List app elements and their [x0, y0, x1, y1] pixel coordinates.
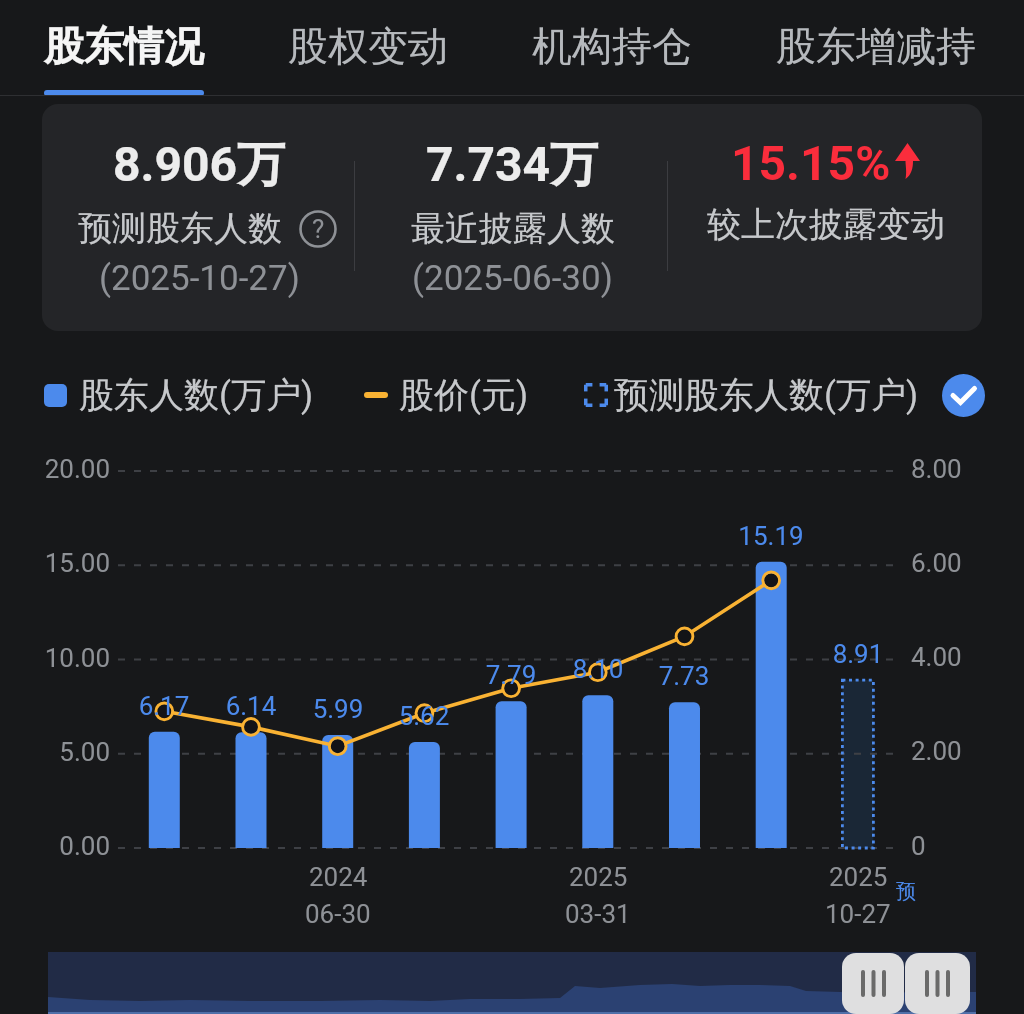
staticText: 6.14	[191, 691, 311, 721]
staticText: (2025-06-30)	[412, 258, 613, 299]
button[interactable]: 预测股东人数(万户)	[584, 373, 919, 417]
staticText: 8.91	[798, 639, 918, 669]
staticText: 机构持仓	[532, 21, 692, 71]
button[interactable]: 股权变动	[288, 0, 448, 96]
staticText: 6.17	[104, 691, 224, 721]
staticText: 0.00	[10, 831, 110, 861]
button[interactable]	[48, 952, 976, 1014]
staticText: ?	[312, 214, 325, 244]
staticText: 8.10	[538, 654, 658, 684]
button[interactable]: 已选中	[942, 374, 985, 417]
staticText: 8.00	[911, 454, 962, 484]
staticText: 股东情况	[44, 21, 204, 71]
button[interactable]: 股价(元)	[364, 373, 529, 417]
button[interactable]: 说明	[299, 210, 337, 248]
staticText: 股东人数(万户)	[79, 373, 314, 417]
staticText: 5.99	[278, 694, 398, 724]
staticText: 4.00	[911, 642, 962, 672]
staticText: 2.00	[911, 736, 962, 766]
staticText: 15.15%	[731, 135, 891, 191]
staticText: 预	[896, 879, 916, 904]
staticText: 7.73	[624, 661, 744, 691]
staticText: 股价(元)	[399, 373, 529, 417]
staticText: 预测股东人数	[78, 207, 282, 250]
staticText: 20.00	[10, 454, 110, 484]
staticText: (2025-10-27)	[99, 258, 300, 299]
staticText: 8.906万	[113, 135, 286, 195]
staticText: 03-31	[565, 899, 631, 929]
button[interactable]: 股东情况	[44, 0, 204, 96]
staticText: 10.00	[10, 643, 110, 673]
staticText: 10-27	[825, 899, 891, 929]
staticText: 6.00	[911, 548, 962, 578]
staticText: 06-30	[305, 899, 371, 929]
staticText: 最近披露人数	[411, 207, 615, 250]
button[interactable]: 15.15%	[669, 104, 982, 331]
staticText: 2025	[829, 862, 888, 892]
button[interactable]: 股东增减持	[776, 0, 976, 96]
staticText: 7.734万	[426, 135, 599, 195]
staticText: 5.62	[364, 701, 484, 731]
button[interactable]: 8.906万	[42, 104, 356, 331]
staticText: 15.19	[711, 521, 831, 551]
staticText: 2024	[309, 862, 368, 892]
staticText: 2025	[569, 862, 628, 892]
button[interactable]: 股东人数(万户)	[44, 373, 314, 417]
staticText: 7.79	[451, 660, 571, 690]
button[interactable]: 左滑块	[842, 953, 904, 1014]
button[interactable]: 机构持仓	[532, 0, 692, 96]
staticText: 股权变动	[288, 21, 448, 71]
staticText: 0	[911, 831, 926, 861]
button[interactable]: 7.734万	[356, 104, 669, 331]
staticText: 15.00	[10, 548, 110, 578]
staticText: 5.00	[10, 737, 110, 767]
staticText: 预测股东人数(万户)	[614, 373, 919, 417]
staticText: 较上次披露变动	[707, 203, 945, 246]
button[interactable]: 右滑块	[905, 953, 970, 1014]
staticText: 股东增减持	[776, 21, 976, 71]
